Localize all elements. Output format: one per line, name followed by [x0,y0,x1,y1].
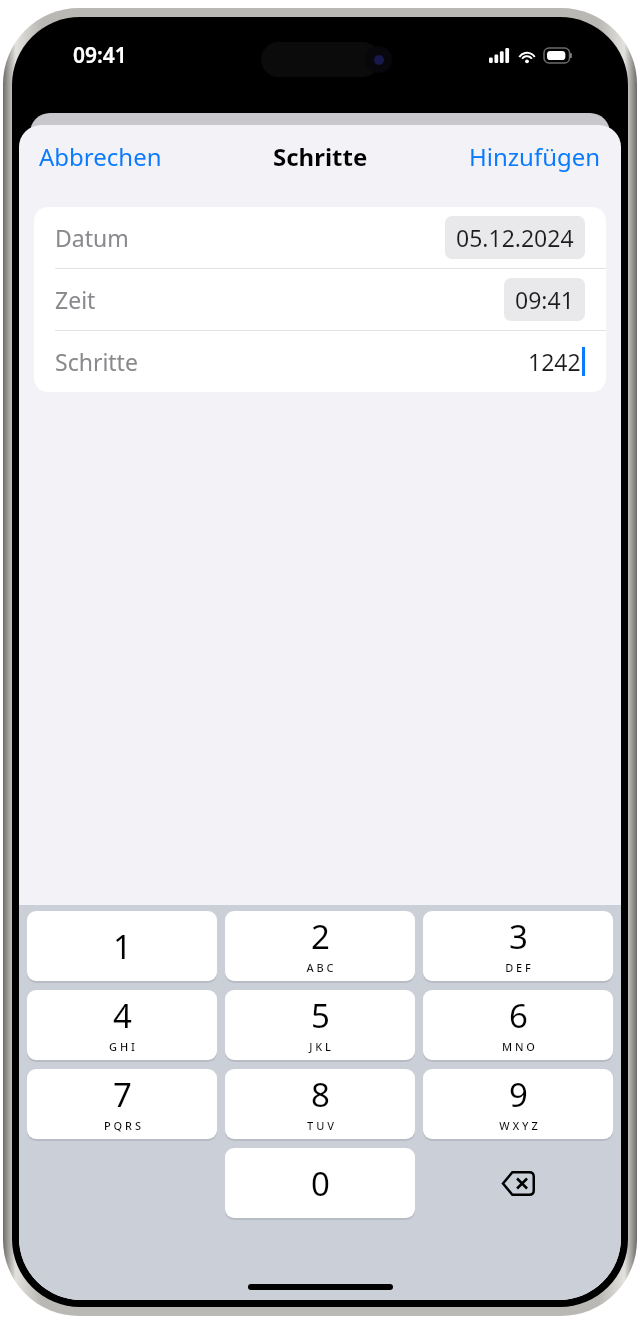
button[interactable]: Zeit [34,269,606,330]
button[interactable]: 1 [27,911,217,981]
button[interactable]: 7 [27,1069,217,1139]
staticText: Schritte [55,346,138,377]
staticText: Schritte [273,140,368,173]
staticText: W X Y Z [499,1118,538,1133]
staticText: 7 [113,1072,132,1117]
staticText: 6 [509,993,528,1038]
staticText: Datum [55,222,129,253]
button[interactable]: 3 [423,911,613,981]
staticText: Zeit [55,284,96,315]
button[interactable]: Schritte [34,331,606,392]
button[interactable]: 5 [225,990,415,1060]
staticText: 09:41 [515,284,574,315]
staticText: 3 [509,914,528,959]
staticText: J K L [309,1039,331,1054]
button[interactable]: Löschen [423,1148,613,1218]
staticText: 09:41 [73,41,127,70]
button[interactable]: Abbrechen [31,134,170,179]
button[interactable]: Datum [34,207,606,268]
staticText: 9 [509,1072,528,1117]
staticText: 05.12.2024 [456,222,574,253]
staticText: G H I [109,1039,135,1054]
staticText: 1 [113,924,132,969]
button[interactable]: 9 [423,1069,613,1139]
button[interactable]: 2 [225,911,415,981]
staticText: 2 [311,914,330,959]
staticText: 8 [311,1072,330,1117]
staticText: M N O [502,1039,535,1054]
staticText: D E F [505,960,531,975]
staticText: Hinzufügen [469,140,601,173]
staticText: P Q R S [104,1118,141,1133]
button[interactable]: 6 [423,990,613,1060]
button[interactable]: 0 [225,1148,415,1218]
staticText: 5 [311,993,330,1038]
staticText: Abbrechen [39,140,162,173]
button[interactable]: 4 [27,990,217,1060]
staticText: 0 [311,1161,330,1206]
staticText: 4 [113,993,132,1038]
staticText: 1242 [528,346,581,377]
staticText: A B C [306,960,334,975]
staticText: T U V [307,1118,334,1133]
button[interactable]: Hinzufügen [461,134,609,179]
button[interactable]: 8 [225,1069,415,1139]
